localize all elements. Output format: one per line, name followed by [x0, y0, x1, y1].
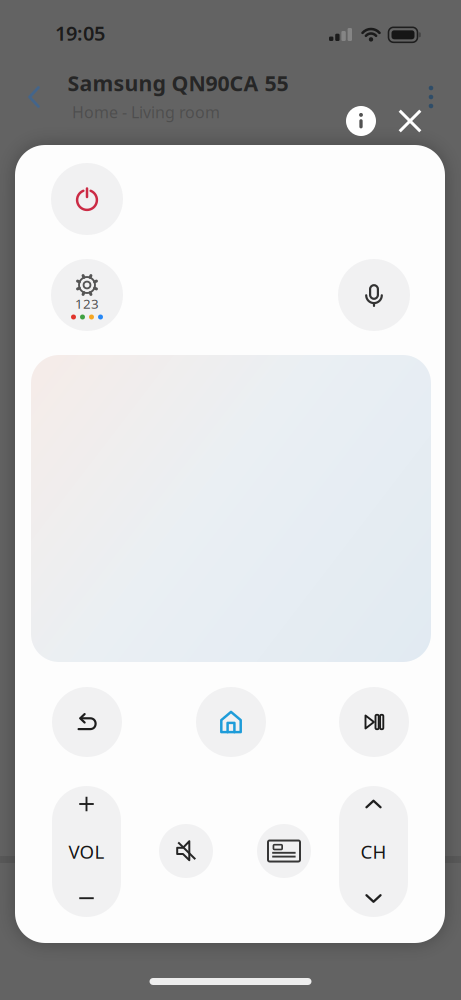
button[interactable]: VOL	[52, 786, 121, 917]
staticText: CH	[360, 839, 386, 864]
staticText: 123	[75, 295, 99, 312]
button[interactable]	[31, 355, 431, 662]
button[interactable]: 123	[51, 259, 123, 331]
button[interactable]	[196, 687, 266, 757]
staticText: VOL	[68, 839, 104, 864]
button[interactable]	[159, 824, 213, 878]
button[interactable]	[339, 687, 409, 757]
staticText: Home - Living room	[72, 101, 220, 123]
button[interactable]	[338, 259, 410, 331]
button[interactable]	[398, 109, 421, 132]
button[interactable]	[257, 824, 311, 878]
button[interactable]	[52, 687, 122, 757]
button[interactable]: CH	[339, 786, 408, 917]
button[interactable]	[346, 106, 376, 136]
button[interactable]	[51, 163, 123, 235]
staticText: Samsung QN90CA 55	[67, 69, 288, 97]
staticText: 19:05	[55, 20, 105, 46]
